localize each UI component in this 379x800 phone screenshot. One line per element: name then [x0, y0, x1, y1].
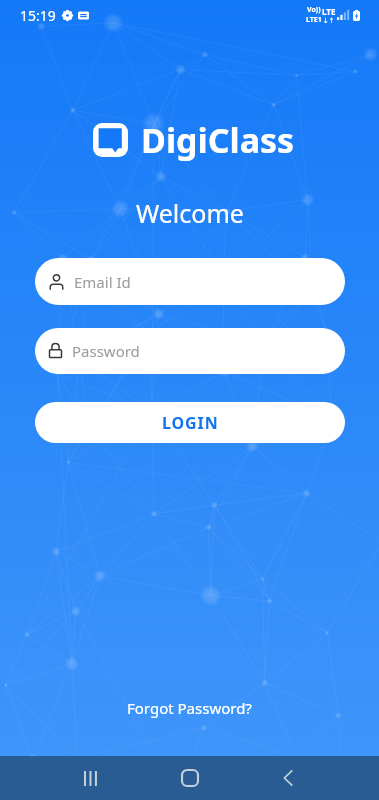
staticText: Password [72, 341, 140, 361]
staticText: 15:19 [20, 6, 56, 25]
button[interactable]: Recent apps [68, 756, 113, 800]
button[interactable]: Email Id [35, 258, 345, 305]
staticText: Vo)) [307, 5, 321, 15]
button[interactable]: LOGIN [35, 402, 345, 443]
staticText: LTE [322, 6, 336, 17]
staticText: Email Id [74, 272, 131, 292]
staticText: Welcome [136, 196, 244, 230]
staticText: ↓↑ [323, 17, 335, 25]
button[interactable]: Back [265, 756, 310, 800]
staticText: LOGIN [162, 412, 219, 434]
button[interactable]: Home [167, 756, 212, 800]
staticText: DigiClass [141, 117, 295, 163]
staticText: LTE1 [306, 15, 322, 25]
button[interactable]: Password [35, 328, 345, 374]
button[interactable]: Forgot Password? [127, 698, 252, 718]
